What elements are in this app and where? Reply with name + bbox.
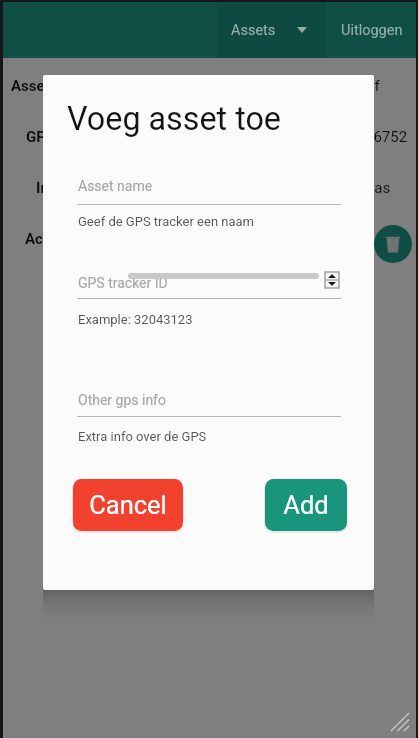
staticText: Assets xyxy=(231,22,276,39)
button[interactable]: Assets xyxy=(217,2,326,58)
staticText: Info xyxy=(36,179,63,197)
button[interactable]: Asset naam xyxy=(11,77,91,95)
staticText: Acties xyxy=(25,230,68,248)
staticText: Cancel xyxy=(89,490,167,520)
staticText: was xyxy=(363,179,391,197)
staticText: 36752 xyxy=(365,128,408,146)
staticText: Extra info over de GPS xyxy=(78,429,207,444)
button[interactable]: Increment or decrement xyxy=(325,272,339,288)
staticText: Golf xyxy=(352,77,380,95)
staticText: Example: 32043123 xyxy=(78,312,193,327)
staticText: Other gps info xyxy=(78,392,166,408)
staticText: Asset name xyxy=(78,178,153,194)
button[interactable]: GPS id xyxy=(26,128,72,146)
button[interactable]: Add xyxy=(265,479,347,531)
button[interactable]: Delete asset xyxy=(374,225,412,263)
button[interactable]: Cancel xyxy=(73,479,183,531)
staticText: Asset naam xyxy=(11,77,91,95)
button[interactable]: Uitloggen xyxy=(326,2,416,58)
button[interactable]: Acties xyxy=(25,230,68,248)
staticText: Geef de GPS tracker een naam xyxy=(78,214,255,229)
staticText: GPS id xyxy=(26,128,72,146)
staticText: Voeg asset toe xyxy=(67,100,281,138)
staticText: Add xyxy=(283,490,329,520)
staticText: GPS tracker ID xyxy=(78,275,168,291)
staticText: Uitloggen xyxy=(341,22,403,39)
button[interactable]: Info xyxy=(36,179,63,197)
